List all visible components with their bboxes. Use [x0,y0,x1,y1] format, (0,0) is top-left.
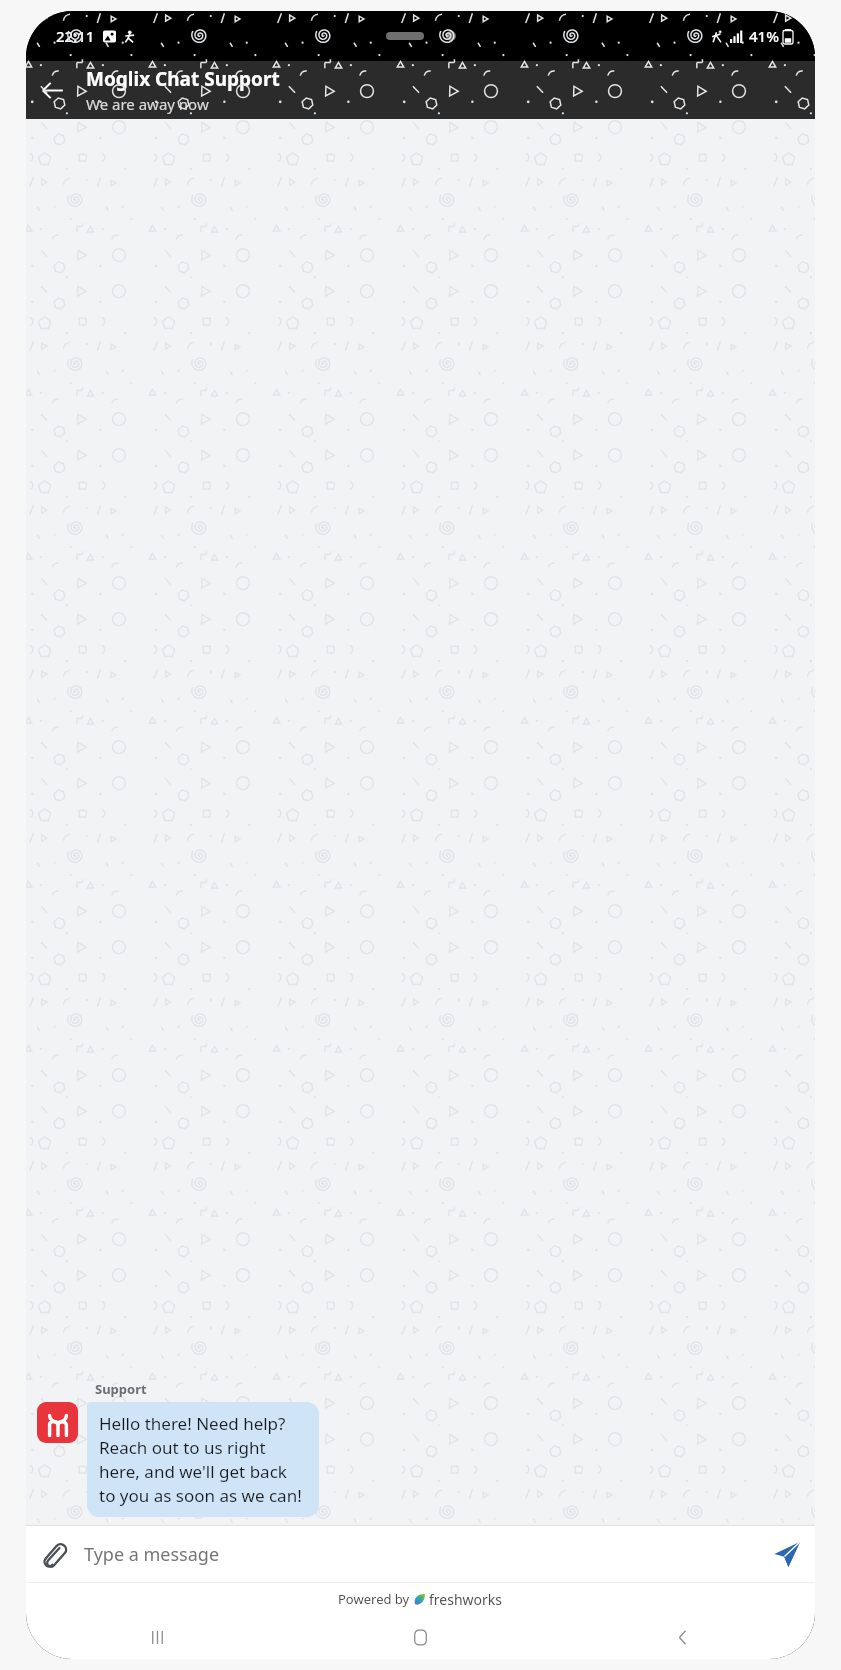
staticText: Hello there! Need help? Reach out to us … [99,1412,307,1507]
button[interactable]: Hello there! Need help? Reach out to us … [87,1402,319,1517]
staticText: 41% [749,26,779,46]
staticText: We are away now [86,94,209,114]
button[interactable]: Back [26,64,78,116]
staticText: Support [95,1380,147,1398]
staticText: Moglix Chat Support [86,66,280,92]
button[interactable]: Recent apps [26,1615,289,1659]
staticText: Type a message [84,1542,220,1567]
button[interactable]: Send [759,1526,815,1582]
button[interactable]: Home [289,1615,552,1659]
button[interactable]: Powered by [26,1583,815,1615]
button[interactable]: Back [552,1615,815,1659]
staticText: 22:11 [56,26,95,46]
button[interactable]: Type a message [80,1526,759,1582]
button[interactable]: Moglix avatar [37,1402,78,1443]
staticText: Powered by [338,1590,413,1608]
button[interactable]: Attach file [26,1527,80,1581]
staticText: freshworks [429,1590,503,1609]
